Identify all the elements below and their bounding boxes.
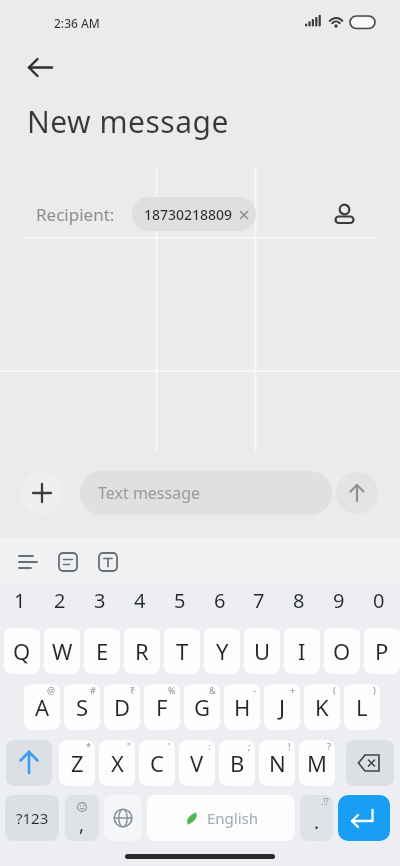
button[interactable]: 0: [359, 586, 399, 614]
button[interactable]: D: [104, 684, 140, 730]
staticText: D: [114, 692, 131, 722]
button[interactable]: F: [144, 684, 180, 730]
staticText: 3: [94, 587, 106, 614]
staticText: C: [150, 748, 164, 778]
staticText: U: [254, 636, 271, 666]
button[interactable]: M: [299, 740, 335, 786]
button[interactable]: V: [179, 740, 215, 786]
button[interactable]: 18730218809: [132, 197, 256, 231]
button[interactable]: .: [300, 795, 333, 841]
staticText: 2: [54, 587, 66, 614]
button[interactable]: H: [224, 684, 260, 730]
staticText: ?: [327, 740, 331, 752]
staticText: New message: [27, 101, 229, 142]
staticText: 9: [333, 587, 345, 614]
button[interactable]: ,: [65, 795, 99, 841]
button[interactable]: 5: [160, 586, 200, 614]
button[interactable]: Text message: [80, 471, 332, 515]
button[interactable]: B: [219, 740, 255, 786]
button[interactable]: 4: [120, 586, 160, 614]
button[interactable]: A: [24, 684, 60, 730]
staticText: #: [90, 684, 96, 696]
button[interactable]: U: [244, 628, 280, 674]
button[interactable]: I: [284, 628, 320, 674]
staticText: 8: [293, 587, 305, 614]
button[interactable]: [338, 795, 390, 841]
staticText: L: [356, 692, 368, 722]
staticText: S: [76, 692, 89, 722]
button[interactable]: 6: [200, 586, 240, 614]
staticText: ": [127, 740, 131, 752]
staticText: -: [253, 684, 256, 696]
button[interactable]: 3: [80, 586, 120, 614]
button[interactable]: [104, 795, 142, 841]
button[interactable]: ?123: [5, 795, 59, 841]
staticText: 4: [134, 587, 146, 614]
staticText: ': [168, 740, 171, 752]
staticText: X: [111, 748, 124, 778]
staticText: ?123: [16, 808, 49, 828]
staticText: !: [288, 740, 291, 752]
button[interactable]: C: [139, 740, 175, 786]
staticText: K: [315, 692, 329, 722]
staticText: I: [298, 636, 306, 666]
button[interactable]: K: [304, 684, 340, 730]
staticText: .: [314, 809, 320, 835]
staticText: Text message: [98, 482, 201, 504]
button[interactable]: [52, 546, 84, 578]
button[interactable]: G: [184, 684, 220, 730]
button[interactable]: [336, 472, 378, 514]
button[interactable]: T: [164, 628, 200, 674]
button[interactable]: 7: [239, 586, 279, 614]
staticText: V: [190, 748, 204, 778]
staticText: Q: [13, 636, 31, 666]
staticText: %: [168, 684, 176, 696]
staticText: G: [194, 692, 211, 722]
staticText: 2:36 AM: [54, 15, 100, 31]
button[interactable]: [92, 546, 124, 578]
staticText: ): [373, 684, 376, 696]
staticText: 5: [174, 587, 186, 614]
button[interactable]: [346, 740, 394, 786]
button[interactable]: X: [99, 740, 135, 786]
staticText: H: [234, 692, 251, 722]
button[interactable]: English: [147, 795, 295, 841]
staticText: P: [375, 636, 389, 666]
button[interactable]: 8: [279, 586, 319, 614]
button[interactable]: J: [264, 684, 300, 730]
staticText: M: [307, 748, 327, 778]
staticText: 18730218809: [144, 205, 233, 224]
button[interactable]: [16, 50, 60, 86]
button[interactable]: N: [259, 740, 295, 786]
staticText: W: [52, 636, 73, 666]
button[interactable]: E: [84, 628, 120, 674]
staticText: B: [230, 748, 245, 778]
staticText: Z: [71, 748, 84, 778]
button[interactable]: P: [364, 628, 400, 674]
button[interactable]: R: [124, 628, 160, 674]
staticText: F: [156, 692, 168, 722]
button[interactable]: [12, 546, 44, 578]
staticText: Recipient:: [36, 203, 115, 226]
button[interactable]: 9: [319, 586, 359, 614]
staticText: :: [208, 740, 211, 752]
button[interactable]: [330, 198, 359, 227]
staticText: .!?: [321, 796, 329, 807]
button[interactable]: [21, 472, 63, 514]
button[interactable]: Z: [59, 740, 95, 786]
button[interactable]: [6, 740, 52, 786]
button[interactable]: 2: [40, 586, 80, 614]
button[interactable]: 1: [0, 586, 40, 614]
staticText: &: [209, 684, 216, 696]
button[interactable]: W: [44, 628, 80, 674]
button[interactable]: S: [64, 684, 100, 730]
staticText: T: [176, 636, 189, 666]
button[interactable]: L: [344, 684, 380, 730]
button[interactable]: Q: [4, 628, 40, 674]
staticText: A: [35, 692, 50, 722]
staticText: (: [333, 684, 336, 696]
staticText: @: [47, 684, 56, 696]
button[interactable]: O: [324, 628, 360, 674]
staticText: ;: [248, 740, 251, 752]
button[interactable]: Y: [204, 628, 240, 674]
